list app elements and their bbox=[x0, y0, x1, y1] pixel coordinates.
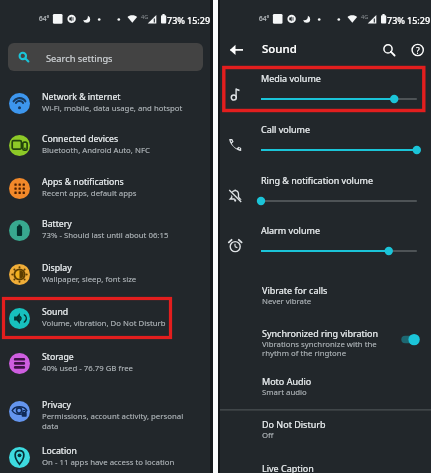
staticText: Do Not Disturb bbox=[262, 418, 326, 430]
button[interactable]: Storage bbox=[0, 342, 210, 384]
staticText: Apps & notifications bbox=[42, 176, 124, 188]
staticText: 4G bbox=[361, 13, 369, 20]
staticText: Sound bbox=[262, 41, 297, 57]
staticText: Bluetooth, Android Auto, NFC bbox=[42, 145, 150, 156]
button[interactable]: Privacy bbox=[0, 390, 210, 432]
staticText: Vibrations synchronize with the bbox=[262, 339, 377, 350]
staticText: Alarm volume bbox=[261, 224, 320, 236]
staticText: Synchronized ring vibration bbox=[262, 327, 379, 339]
staticText: Call volume bbox=[261, 123, 311, 135]
staticText: Network & internet bbox=[42, 91, 121, 103]
staticText: Vibrate for calls bbox=[262, 284, 328, 296]
staticText: Storage bbox=[42, 351, 74, 363]
button[interactable]: Ring & notification volume bbox=[220, 169, 431, 213]
staticText: Battery bbox=[42, 218, 72, 230]
button[interactable]: Search settings bbox=[8, 43, 203, 71]
staticText: Ring & notification volume bbox=[261, 174, 373, 186]
staticText: Search settings bbox=[46, 52, 113, 65]
staticText: On - 11 apps have access to location bbox=[42, 457, 175, 468]
staticText: 64° bbox=[259, 14, 270, 23]
staticText: 40% used - 76.79 GB free bbox=[42, 363, 134, 374]
button[interactable]: Search bbox=[376, 37, 402, 63]
staticText: Privacy bbox=[42, 399, 71, 411]
button[interactable]: Synchronized ring vibration bbox=[220, 321, 431, 367]
staticText: Location bbox=[42, 445, 77, 457]
staticText: Volume, vibration, Do Not Disturb bbox=[42, 318, 166, 329]
staticText: rhythm of the ringtone bbox=[262, 348, 347, 359]
staticText: Permissions, account activity, personal bbox=[42, 411, 184, 422]
staticText: Wallpaper, sleep, font size bbox=[42, 274, 137, 285]
staticText: Connected devices bbox=[42, 133, 119, 145]
button[interactable]: Synchronized ring vibration bbox=[397, 330, 423, 350]
button[interactable]: Connected devices bbox=[0, 124, 210, 166]
staticText: Never vibrate bbox=[262, 296, 312, 307]
button[interactable]: Location bbox=[0, 436, 210, 473]
button[interactable]: Help bbox=[405, 37, 431, 63]
button[interactable]: Network & internet bbox=[0, 82, 210, 124]
button[interactable]: Sound bbox=[0, 297, 210, 339]
staticText: Off bbox=[262, 430, 274, 441]
staticText: 15:29 bbox=[407, 14, 431, 26]
button[interactable]: Battery bbox=[0, 209, 210, 251]
staticText: Sound bbox=[42, 306, 69, 318]
staticText: 64° bbox=[39, 14, 50, 23]
button[interactable]: Display bbox=[0, 253, 210, 295]
staticText: Live Caption bbox=[262, 462, 314, 473]
staticText: Smart audio bbox=[262, 387, 307, 398]
staticText: data bbox=[42, 421, 59, 432]
button[interactable]: Apps & notifications bbox=[0, 167, 210, 209]
button[interactable]: Vibrate for calls bbox=[220, 278, 431, 316]
button[interactable]: Media volume bbox=[220, 67, 431, 111]
staticText: Moto Audio bbox=[262, 375, 312, 387]
staticText: ? bbox=[416, 45, 420, 57]
staticText: Media volume bbox=[261, 72, 321, 84]
staticText: 4G bbox=[141, 13, 149, 20]
button[interactable]: Call volume bbox=[220, 118, 431, 162]
staticText: Display bbox=[42, 262, 72, 274]
staticText: 15:29 bbox=[187, 14, 211, 26]
staticText: 73% - Should last until about 06:15 bbox=[42, 230, 169, 241]
staticText: 73% bbox=[167, 14, 185, 26]
button[interactable]: Do Not Disturb bbox=[220, 412, 431, 450]
button[interactable]: Moto Audio bbox=[220, 369, 431, 407]
button[interactable]: Alarm volume bbox=[220, 219, 431, 263]
button[interactable]: Back bbox=[222, 37, 248, 63]
staticText: Recent apps, default apps bbox=[42, 188, 137, 199]
staticText: 73% bbox=[387, 14, 405, 26]
staticText: Wi-Fi, mobile, data usage, and hotspot bbox=[42, 103, 183, 114]
